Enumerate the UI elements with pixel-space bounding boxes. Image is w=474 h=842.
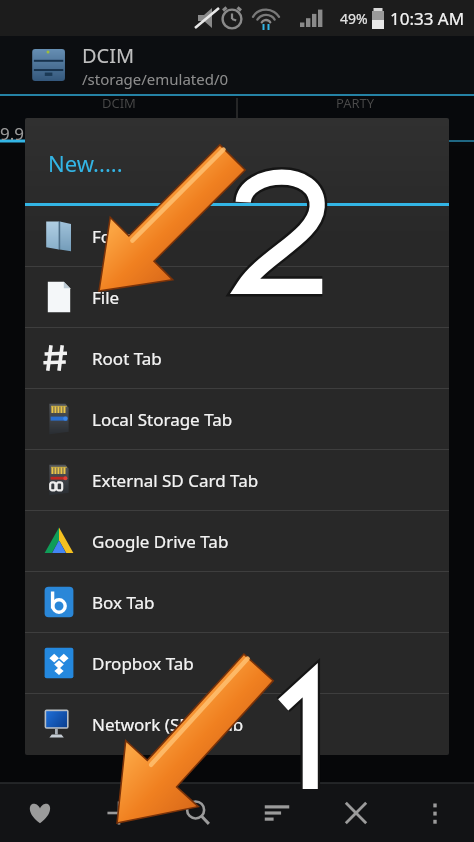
button[interactable]: External SD Card Tab bbox=[25, 450, 449, 510]
staticText: Network (SMB) Tab bbox=[92, 713, 244, 736]
staticText: DCIM bbox=[102, 94, 136, 112]
button[interactable]: Box Tab bbox=[25, 572, 449, 632]
staticText: /storage/emulated/0 bbox=[82, 69, 229, 89]
staticText: Google Drive Tab bbox=[92, 530, 229, 553]
staticText: Folder bbox=[92, 225, 143, 248]
staticText: 9.9 bbox=[0, 122, 25, 145]
button[interactable]: Google Drive Tab bbox=[25, 511, 449, 571]
staticText: New..... bbox=[48, 148, 123, 178]
staticText: External SD Card Tab bbox=[92, 469, 259, 492]
button[interactable]: File bbox=[25, 267, 449, 327]
button[interactable]: Root Tab bbox=[25, 328, 449, 388]
staticText: 49% bbox=[340, 9, 368, 28]
staticText: Dropbox Tab bbox=[92, 652, 194, 675]
button[interactable]: Folder bbox=[25, 206, 449, 266]
button[interactable]: Close bbox=[316, 783, 395, 842]
staticText: File bbox=[92, 286, 120, 309]
staticText: DCIM bbox=[82, 42, 135, 69]
staticText: PARTY bbox=[336, 94, 375, 112]
button[interactable]: More options bbox=[395, 783, 474, 842]
button[interactable]: Network (SMB) Tab bbox=[25, 694, 449, 754]
button[interactable]: Dropbox Tab bbox=[25, 633, 449, 693]
button[interactable]: Search bbox=[158, 783, 237, 842]
staticText: Box Tab bbox=[92, 591, 155, 614]
staticText: 10:33 AM bbox=[390, 7, 465, 30]
button[interactable]: Favorites bbox=[0, 783, 79, 842]
button[interactable]: Local Storage Tab bbox=[25, 389, 449, 449]
staticText: Root Tab bbox=[92, 347, 162, 370]
button[interactable]: DCIM bbox=[0, 94, 237, 112]
button[interactable]: PARTY bbox=[237, 94, 474, 112]
button[interactable]: Sort bbox=[237, 783, 316, 842]
button[interactable]: New bbox=[79, 783, 158, 842]
staticText: Local Storage Tab bbox=[92, 408, 233, 431]
